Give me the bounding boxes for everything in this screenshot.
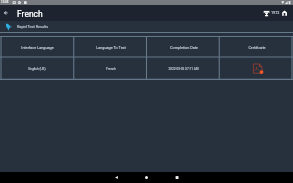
button[interactable]: Recent apps [166, 172, 186, 183]
staticText: 12:08 [1, 0, 9, 4]
button[interactable]: 2022-03-02 07:11 AM [147, 57, 220, 80]
staticText: French [17, 9, 43, 19]
staticText: 2022-03-02 07:11 AM [168, 67, 199, 71]
staticText: 1972 [271, 10, 280, 15]
button[interactable]: Back [106, 172, 126, 183]
staticText: Rapid Test Results [17, 24, 49, 28]
staticText: English (US) [28, 67, 46, 71]
button[interactable]: Navigate up [1, 8, 11, 18]
button[interactable]: Download certificate PDF [220, 57, 293, 80]
button[interactable]: French [74, 57, 147, 80]
staticText: Language To Test [96, 46, 126, 50]
button[interactable]: English (US) [0, 57, 74, 80]
button[interactable]: Points [263, 10, 270, 17]
staticText: Interface Language [21, 46, 54, 50]
button[interactable]: Download certificate PDF [251, 63, 263, 75]
staticText: French [106, 67, 116, 71]
staticText: Certificate [248, 46, 266, 50]
button[interactable]: Home [281, 10, 288, 17]
staticText: Completion Date [170, 46, 198, 50]
button[interactable]: Home [136, 172, 156, 183]
